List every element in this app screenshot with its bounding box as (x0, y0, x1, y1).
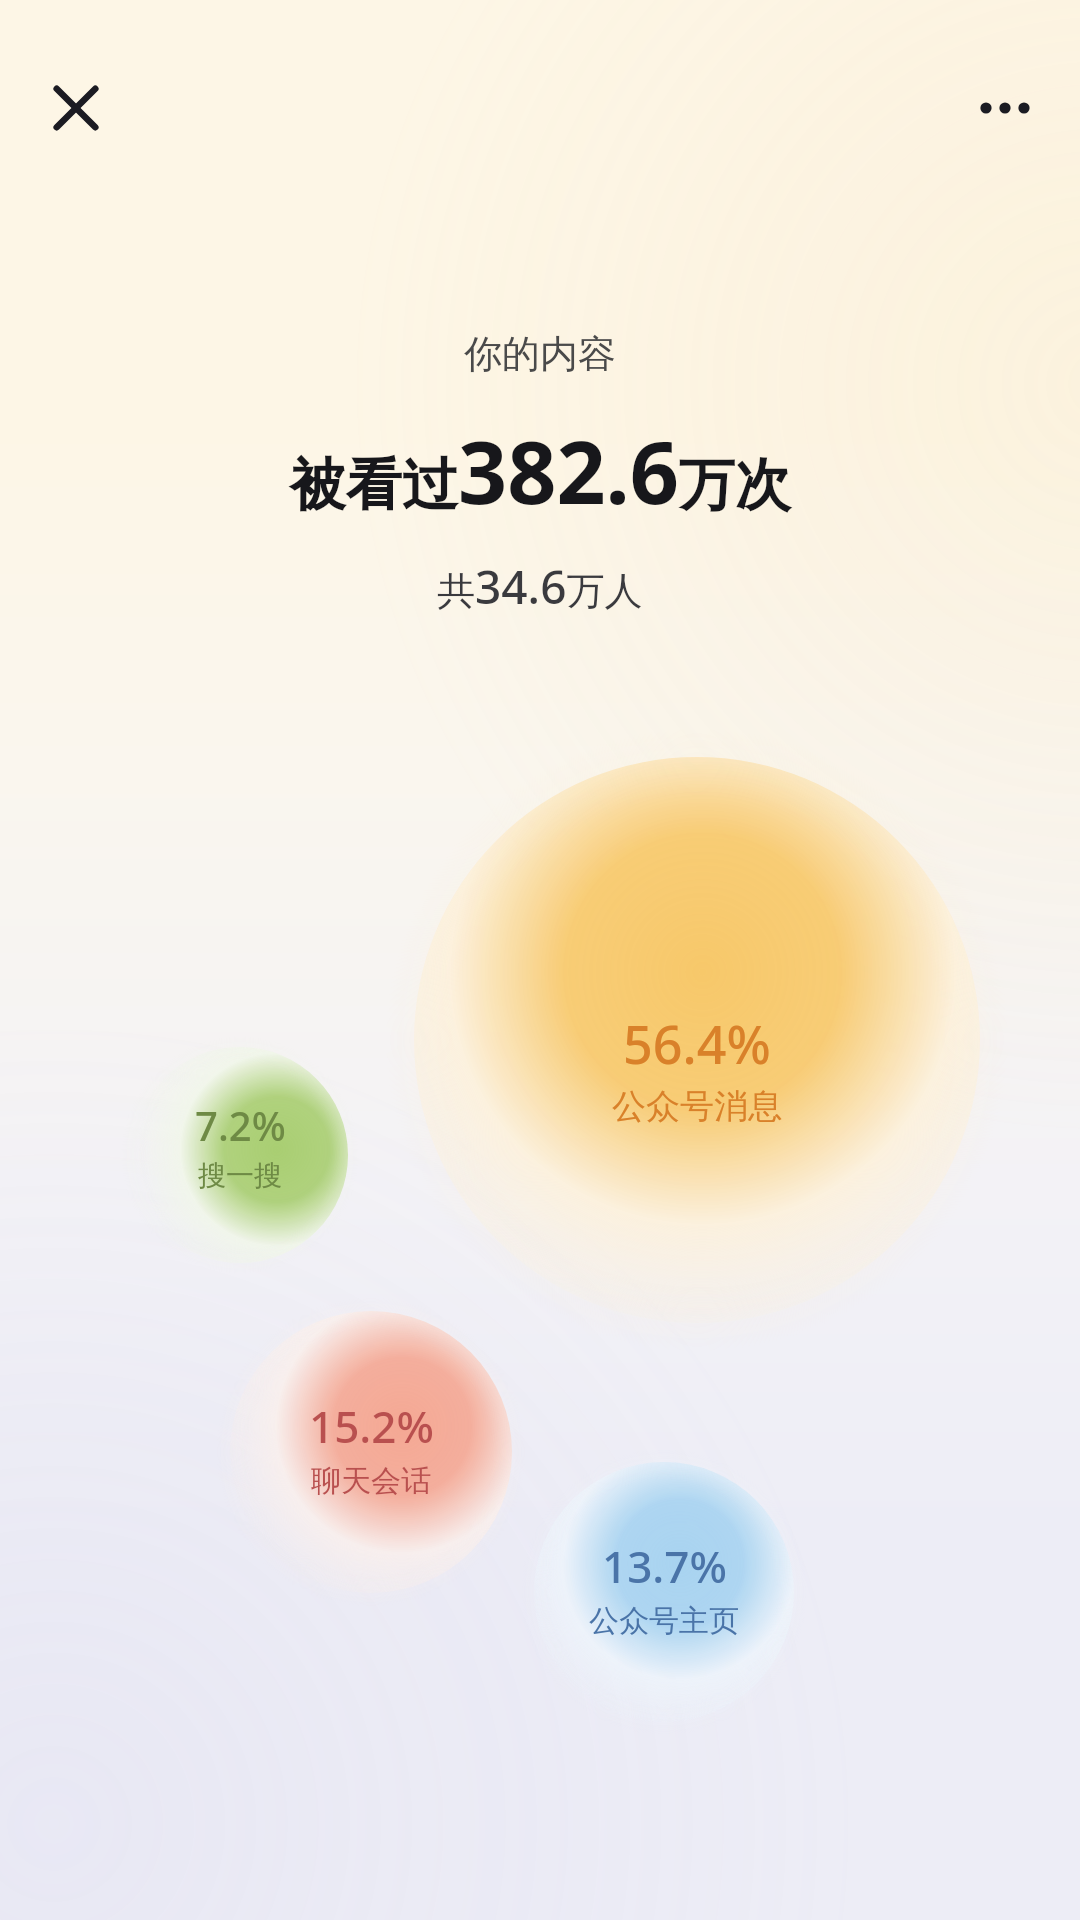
staticText: 56.4% (623, 1008, 771, 1079)
other: 公众号消息 56.4% (0, 0, 1080, 1920)
button[interactable]: 7.2% (70, 1098, 410, 1193)
staticText: 被看过382.6万次 (290, 412, 791, 529)
staticText: 聊天会话 (311, 1462, 431, 1500)
other: 聊天会话 15.2% (0, 0, 1080, 1920)
button[interactable]: 15.2% (201, 1396, 541, 1500)
staticText: 13.7% (602, 1536, 727, 1596)
button[interactable]: Close (34, 66, 118, 150)
staticText: 15.2% (309, 1396, 434, 1456)
staticText: 公众号消息 (612, 1085, 782, 1128)
staticText: 7.2% (195, 1098, 286, 1152)
staticText: 搜一搜 (198, 1158, 282, 1193)
button[interactable]: 13.7% (494, 1536, 834, 1640)
other: 公众号主页 13.7% (0, 0, 1080, 1920)
staticText: 公众号主页 (589, 1602, 739, 1640)
staticText: 共34.6万人 (437, 555, 643, 618)
staticText: 你的内容 (464, 330, 616, 378)
button[interactable]: More options (963, 66, 1047, 150)
button[interactable]: 56.4% (527, 1008, 867, 1128)
other: 搜一搜 7.2% (0, 0, 1080, 1920)
